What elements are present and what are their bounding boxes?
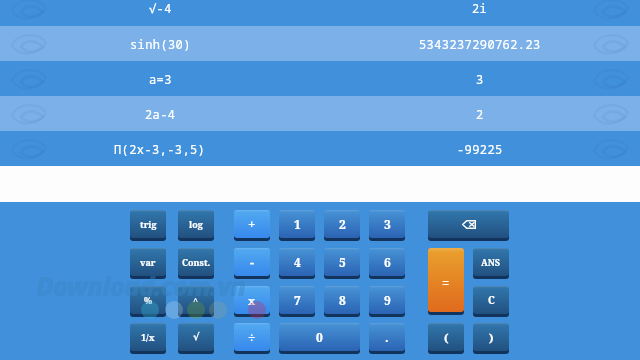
staticText: 1/x [141, 331, 155, 343]
button[interactable]: Π(2x-3,-3,5) [0, 131, 640, 166]
button[interactable]: - [234, 248, 270, 276]
button[interactable]: 9 [369, 286, 405, 314]
button[interactable]: trig [130, 210, 166, 238]
staticText: 2i [472, 0, 488, 16]
staticText: ^ [193, 294, 199, 306]
button[interactable]: 7 [279, 286, 315, 314]
button[interactable]: ) [473, 323, 509, 351]
staticText: Π(2x-3,-3,5) [114, 141, 206, 157]
button[interactable]: % [130, 286, 166, 314]
button[interactable]: 1/x [130, 323, 166, 351]
staticText: 2 [339, 216, 346, 232]
staticText: 3 [384, 216, 391, 232]
staticText: C [488, 293, 495, 307]
staticText: ( [444, 330, 449, 345]
staticText: 4 [294, 254, 301, 270]
button[interactable]: 5 [324, 248, 360, 276]
staticText: √-4 [149, 0, 172, 16]
staticText: 9 [384, 292, 391, 308]
staticText: = [442, 274, 450, 292]
button[interactable]: Const. [178, 248, 214, 276]
staticText: -99225 [457, 141, 503, 157]
staticText: ANS [481, 256, 501, 268]
button[interactable]: 3 [369, 210, 405, 238]
staticText: 5343237290762.23 [419, 36, 541, 52]
staticText: - [250, 253, 255, 271]
staticText: + [248, 215, 256, 233]
staticText: √ [193, 331, 200, 343]
staticText: 5 [339, 254, 346, 270]
button[interactable]: 0 [279, 323, 360, 351]
staticText: Download.com.vn [36, 268, 246, 303]
button[interactable]: ^ [178, 286, 214, 314]
button[interactable]: √-4 [0, 0, 640, 21]
button[interactable]: a=3 [0, 61, 640, 96]
staticText: var [140, 256, 156, 268]
button[interactable]: ( [428, 323, 464, 351]
staticText: 2 [476, 106, 484, 122]
staticText: a=3 [149, 71, 172, 87]
staticText: 7 [294, 292, 301, 308]
staticText: trig [140, 218, 157, 230]
button[interactable]: log [178, 210, 214, 238]
staticText: % [144, 294, 153, 306]
button[interactable]: + [234, 210, 270, 238]
button[interactable]: ÷ [234, 323, 270, 351]
staticText: 8 [339, 292, 346, 308]
button[interactable]: 2 [324, 210, 360, 238]
button[interactable]: ANS [473, 248, 509, 276]
button[interactable] [428, 210, 509, 238]
button[interactable]: √ [178, 323, 214, 351]
staticText: sinh(30) [130, 36, 191, 52]
staticText: . [385, 329, 389, 345]
staticText: 1 [294, 216, 301, 232]
staticText: Const. [182, 256, 211, 268]
staticText: 0 [316, 329, 323, 345]
button[interactable]: sinh(30) [0, 26, 640, 61]
staticText: 6 [384, 254, 391, 270]
button[interactable]: = [428, 248, 464, 312]
button[interactable]: . [369, 323, 405, 351]
staticText: 2a-4 [145, 106, 176, 122]
button[interactable]: 4 [279, 248, 315, 276]
staticText: log [189, 218, 203, 230]
staticText: x [248, 293, 256, 308]
button[interactable]: 1 [279, 210, 315, 238]
button[interactable]: var [130, 248, 166, 276]
button[interactable]: 6 [369, 248, 405, 276]
button[interactable]: x [234, 286, 270, 314]
button[interactable]: 8 [324, 286, 360, 314]
staticText: ÷ [248, 328, 256, 346]
other: Backspace [428, 210, 509, 241]
staticText: ) [489, 330, 494, 345]
button[interactable]: 2a-4 [0, 96, 640, 131]
staticText: 3 [476, 71, 484, 87]
button[interactable]: C [473, 286, 509, 314]
